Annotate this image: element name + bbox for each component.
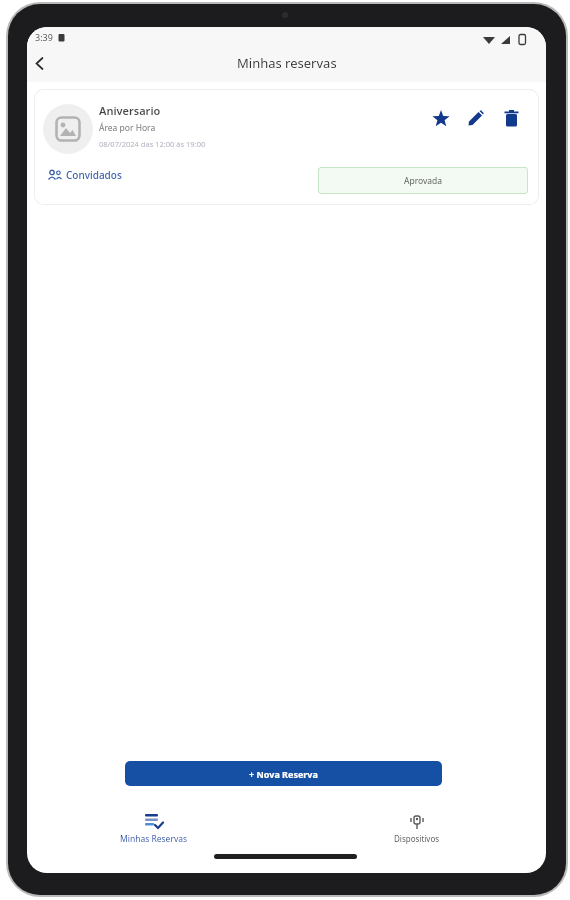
staticText: Minhas reservas bbox=[237, 54, 337, 72]
staticText: 3:39 bbox=[35, 31, 53, 43]
button[interactable] bbox=[467, 110, 484, 127]
button[interactable]: Dispositivos bbox=[390, 813, 444, 844]
button[interactable] bbox=[432, 110, 450, 128]
staticText: + Nova Reserva bbox=[249, 768, 318, 780]
button[interactable] bbox=[35, 57, 45, 70]
button[interactable] bbox=[504, 110, 519, 127]
staticText: Minhas Reservas bbox=[120, 833, 188, 845]
staticText: Aprovada bbox=[404, 175, 443, 187]
button[interactable]: + Nova Reserva bbox=[125, 761, 442, 786]
staticText: 08/07/2024 das 12:00 às 19:00 bbox=[99, 139, 206, 149]
staticText: Aniversario bbox=[99, 103, 161, 118]
staticText: Convidados bbox=[66, 168, 122, 182]
staticText: Área por Hora bbox=[99, 122, 156, 134]
button[interactable]: Minhas Reservas bbox=[114, 813, 194, 845]
button[interactable]: Aprovada bbox=[318, 167, 528, 194]
button[interactable]: Convidados bbox=[48, 168, 122, 182]
staticText: Dispositivos bbox=[394, 833, 440, 844]
